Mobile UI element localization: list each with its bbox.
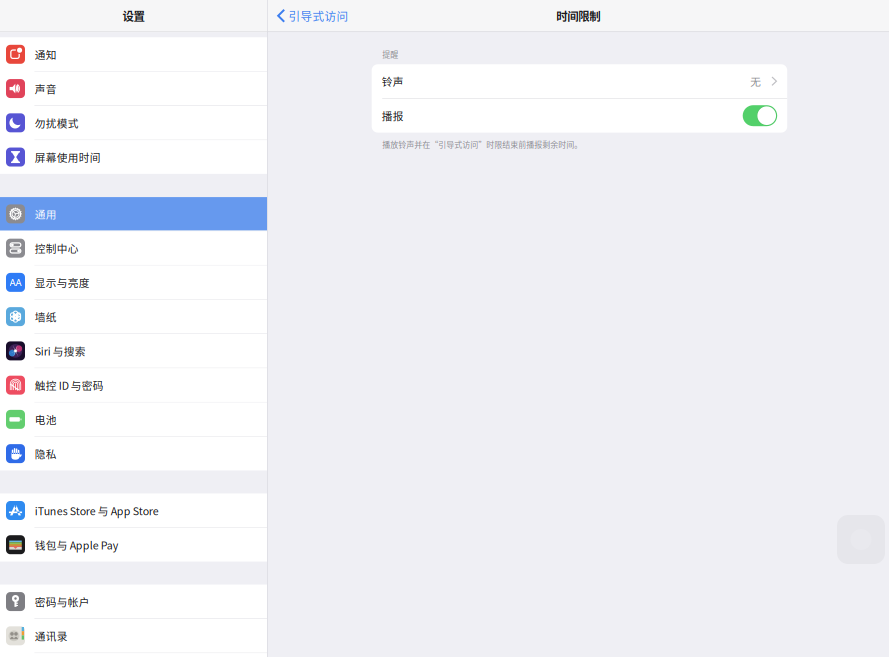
- staticText: 触控 ID 与密码: [35, 377, 104, 393]
- staticText: 墙纸: [35, 309, 57, 324]
- staticText: 播报: [382, 108, 404, 123]
- button[interactable]: 钱包与 Apple Pay: [0, 528, 267, 561]
- staticText: 控制中心: [35, 240, 79, 256]
- staticText: 铃声: [382, 73, 404, 89]
- staticText: 通知: [35, 47, 57, 62]
- staticText: 通讯录: [35, 628, 68, 643]
- staticText: 设置: [122, 7, 144, 24]
- button[interactable]: 通讯录: [0, 619, 267, 653]
- button[interactable]: 勿扰模式: [0, 106, 267, 140]
- button[interactable]: 触控 ID 与密码: [0, 368, 267, 402]
- button[interactable]: 屏幕使用时间: [0, 140, 267, 174]
- staticText: 时间限制: [556, 7, 600, 24]
- button[interactable]: 播报: [743, 105, 777, 126]
- button[interactable]: 控制中心: [0, 231, 267, 265]
- button[interactable]: Siri 与搜索: [0, 334, 267, 368]
- staticText: 屏幕使用时间: [35, 149, 101, 165]
- staticText: iTunes Store 与 App Store: [35, 503, 159, 518]
- staticText: 声音: [35, 81, 57, 96]
- button[interactable]: 铃声: [372, 64, 787, 98]
- staticText: 密码与帐户: [35, 594, 90, 609]
- button[interactable]: AA: [0, 266, 267, 299]
- staticText: Siri 与搜索: [35, 343, 86, 359]
- button[interactable]: 墙纸: [0, 300, 267, 333]
- staticText: 钱包与 Apple Pay: [35, 537, 119, 552]
- staticText: 播放铃声并在“引导式访问”时限结束前播报剩余时间。: [382, 139, 582, 150]
- button[interactable]: 声音: [0, 72, 267, 105]
- button[interactable]: 电池: [0, 403, 267, 436]
- staticText: 无: [750, 73, 761, 89]
- button[interactable]: iTunes Store 与 App Store: [0, 494, 267, 527]
- button[interactable]: 通用: [0, 197, 267, 231]
- staticText: 通用: [35, 206, 57, 222]
- staticText: 勿扰模式: [35, 115, 79, 130]
- button[interactable]: 引导式访问: [268, 0, 348, 31]
- staticText: 显示与亮度: [35, 275, 90, 290]
- staticText: AA: [9, 276, 21, 289]
- button[interactable]: 隐私: [0, 437, 267, 470]
- staticText: 隐私: [35, 446, 57, 461]
- staticText: 电池: [35, 412, 57, 427]
- button[interactable]: 通知: [0, 37, 267, 71]
- staticText: 提醒: [382, 48, 398, 60]
- button[interactable]: 密码与帐户: [0, 585, 267, 618]
- staticText: 引导式访问: [288, 7, 348, 24]
